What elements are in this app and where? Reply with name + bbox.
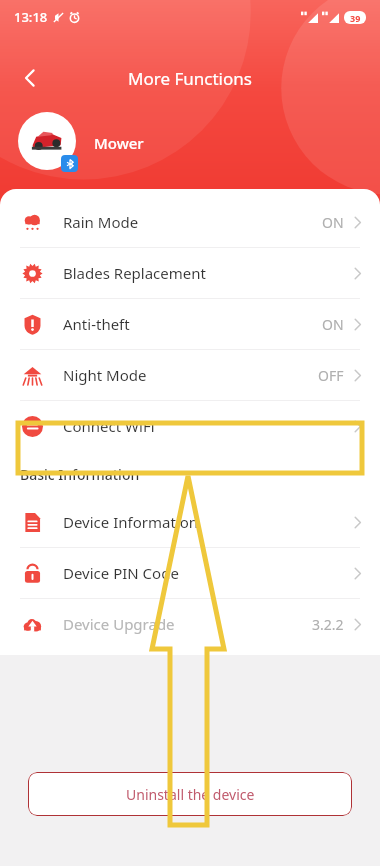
staticText: ON [322, 315, 344, 334]
staticText: Anti-theft [63, 314, 130, 334]
staticText: Device PIN Code [63, 563, 179, 583]
staticText: Blades Replacement [63, 263, 206, 283]
staticText: Night Mode [63, 365, 147, 385]
staticText: OFF [318, 366, 344, 385]
staticText: Device Information [63, 512, 199, 532]
staticText: Uninstall the device [126, 785, 255, 804]
staticText: Connect WiFi [63, 416, 155, 436]
staticText: Mower [94, 133, 144, 153]
staticText: 39 [350, 12, 361, 24]
button[interactable]: Back [6, 54, 54, 102]
button[interactable]: Device PIN Code [0, 548, 380, 598]
staticText: Rain Mode [63, 212, 139, 232]
staticText: 13:18 [14, 8, 48, 26]
button[interactable]: Blades Replacement [0, 248, 380, 298]
button[interactable]: Device Upgrade [0, 599, 380, 649]
staticText: Basic Information [20, 465, 140, 484]
button[interactable]: Connect WiFi [0, 401, 380, 451]
button[interactable]: Anti-theft [0, 299, 380, 349]
staticText: 3.2.2 [312, 615, 344, 634]
button[interactable]: Night Mode [0, 350, 380, 400]
staticText: Device Upgrade [63, 614, 175, 634]
button[interactable]: Device Information [0, 497, 380, 547]
staticText: ON [322, 213, 344, 232]
button[interactable]: Uninstall the device [28, 772, 352, 816]
button[interactable]: Rain Mode [0, 197, 380, 247]
staticText: More Functions [128, 67, 252, 90]
